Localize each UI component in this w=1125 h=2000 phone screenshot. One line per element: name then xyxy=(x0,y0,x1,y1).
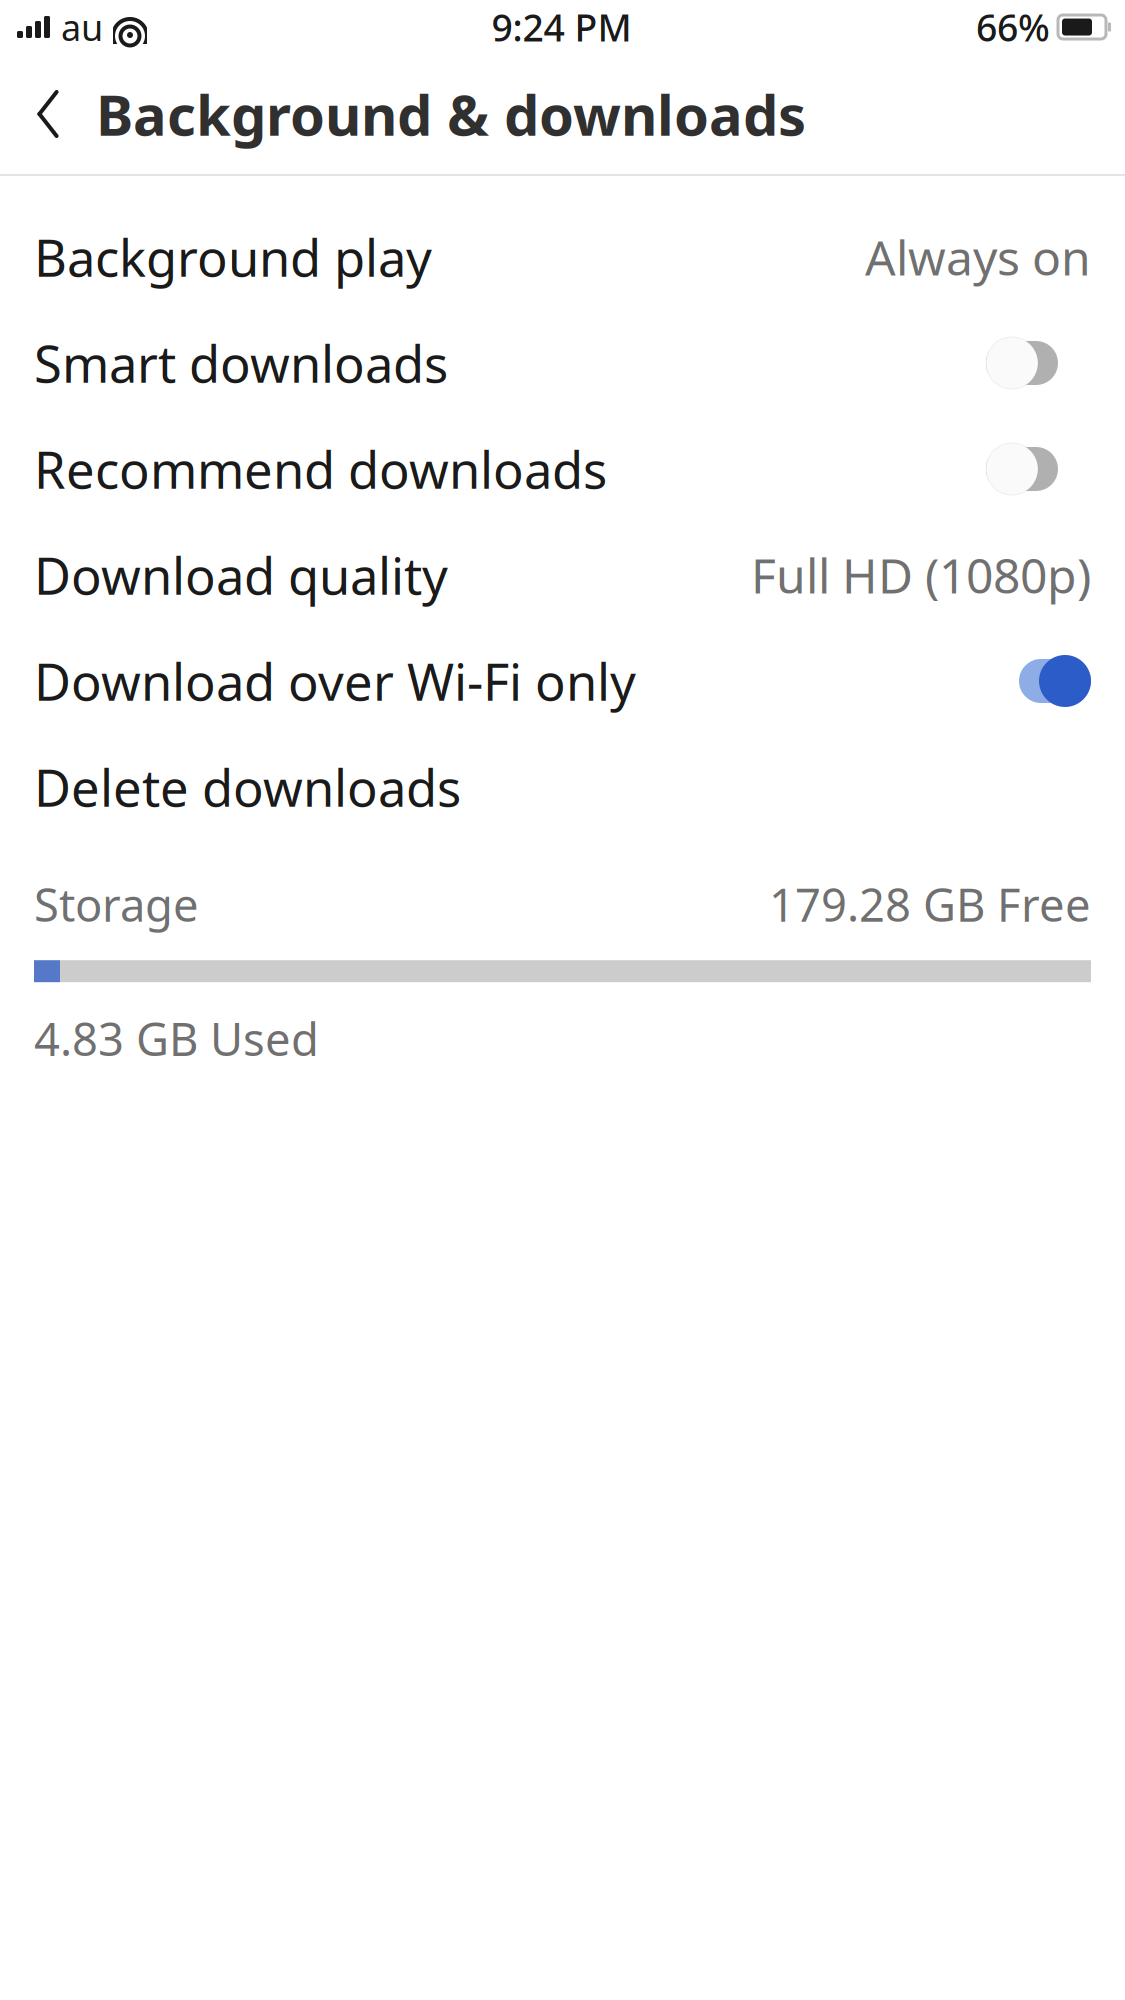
staticText: Download quality xyxy=(34,541,448,609)
button[interactable]: Background play xyxy=(0,204,1125,310)
button[interactable]: Delete downloads xyxy=(0,734,1125,840)
staticText: Download over Wi-Fi only xyxy=(34,647,636,715)
staticText: Recommend downloads xyxy=(34,435,607,503)
staticText: 66% xyxy=(976,2,1050,52)
button[interactable]: Download over Wi-Fi only xyxy=(0,628,1125,734)
staticText: Storage xyxy=(34,874,199,934)
staticText: au xyxy=(61,3,103,51)
staticText: Full HD (1080p) xyxy=(751,543,1091,607)
staticText: 4.83 GB Used xyxy=(34,1008,319,1068)
staticText: Smart downloads xyxy=(34,329,448,397)
staticText: 179.28 GB Free xyxy=(769,874,1091,934)
staticText: Delete downloads xyxy=(34,753,461,821)
staticText: Background play xyxy=(34,223,432,291)
staticText: Always on xyxy=(865,225,1091,289)
staticText: 9:24 PM xyxy=(491,2,631,52)
button[interactable]: Recommend downloads xyxy=(0,416,1125,522)
button[interactable]: Back xyxy=(10,76,86,152)
button[interactable]: Download quality xyxy=(0,522,1125,628)
staticText: Background & downloads xyxy=(96,77,806,151)
button[interactable]: Smart downloads xyxy=(0,310,1125,416)
